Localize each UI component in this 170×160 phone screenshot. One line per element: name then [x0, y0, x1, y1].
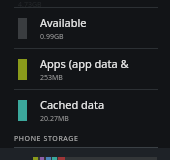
staticText: Cached data	[40, 97, 105, 112]
staticText: Available	[40, 15, 87, 30]
staticText: 0.99GB	[40, 32, 64, 42]
button[interactable]	[33, 157, 157, 160]
staticText: 20.27MB	[40, 114, 69, 124]
staticText: Apps (app data & media c	[40, 56, 162, 71]
staticText: PHONE STORAGE	[14, 134, 79, 144]
staticText: 4.73GB	[18, 0, 42, 7]
staticText: 253MB	[40, 73, 63, 83]
button[interactable]: Available	[0, 8, 170, 48]
button[interactable]: Cached data	[0, 90, 170, 130]
button[interactable]: Apps (app data & media c	[0, 49, 170, 89]
